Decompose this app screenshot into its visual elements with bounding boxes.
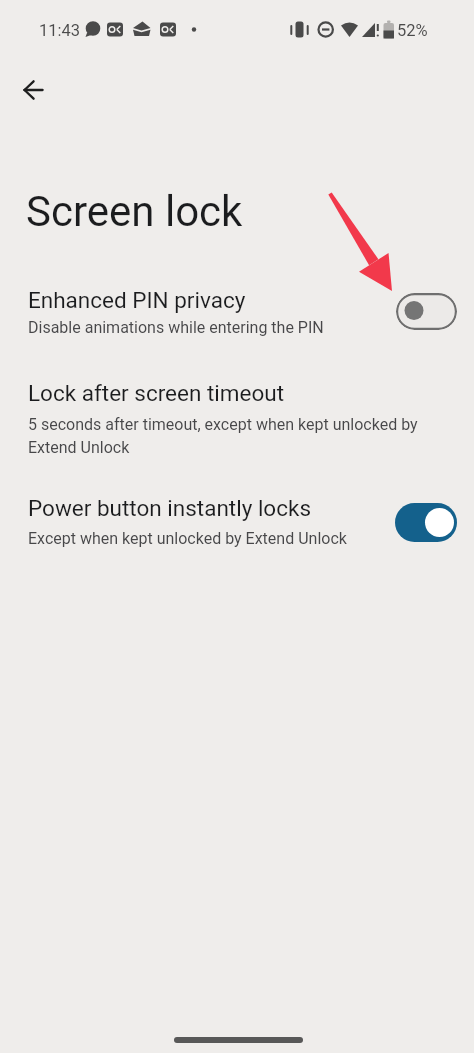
staticText: Power button instantly locks — [28, 495, 311, 521]
staticText: 5 seconds after timeout, except when kep… — [28, 415, 418, 434]
button[interactable] — [395, 503, 457, 542]
button[interactable]: Power button instantly locks — [0, 478, 474, 566]
button[interactable] — [396, 293, 457, 330]
staticText: Disable animations while entering the PI… — [28, 318, 324, 337]
button[interactable]: Lock after screen timeout — [0, 362, 474, 468]
staticText: Enhanced PIN privacy — [28, 287, 246, 313]
staticText: Except when kept unlocked by Extend Unlo… — [28, 529, 347, 548]
staticText: Lock after screen timeout — [28, 380, 285, 406]
staticText: Screen lock — [26, 187, 243, 236]
staticText: 52% — [397, 21, 428, 40]
staticText: 11:43 — [39, 21, 81, 40]
staticText: Extend Unlock — [28, 438, 130, 457]
button[interactable] — [12, 68, 56, 112]
button[interactable]: Enhanced PIN privacy — [0, 268, 474, 352]
